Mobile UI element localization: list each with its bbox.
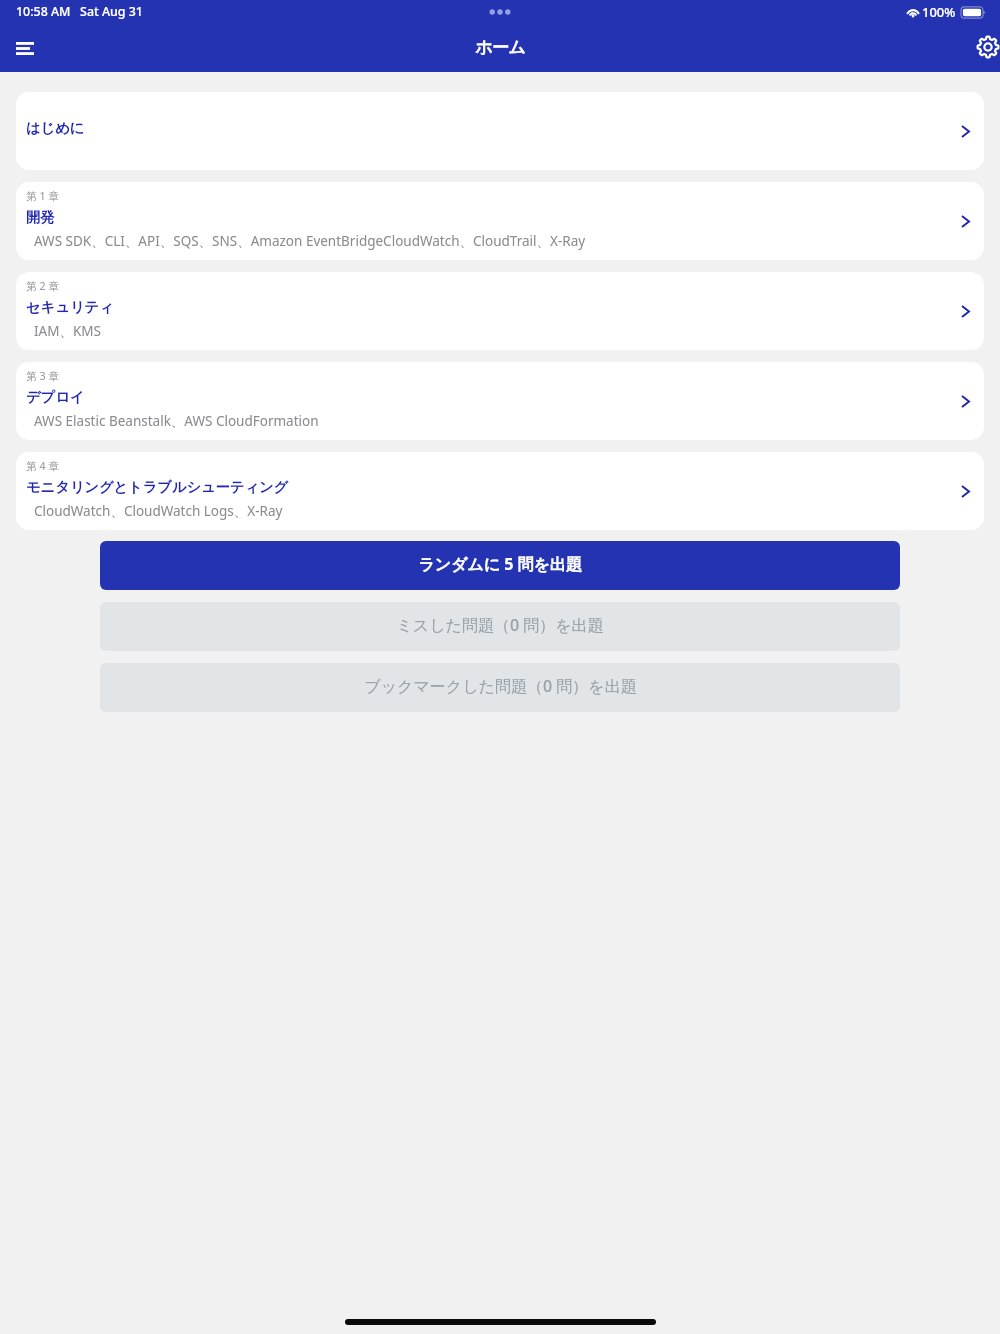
staticText: はじめに <box>26 119 85 137</box>
staticText: ブックマークした問題（0 問）を出題 <box>364 675 637 697</box>
button[interactable]: ミスした問題（0 問）を出題 <box>100 602 900 651</box>
staticText: モニタリングとトラブルシューティング <box>26 478 289 496</box>
staticText: ランダムに 5 問を出題 <box>418 553 582 575</box>
staticText: 第 3 章 <box>26 369 60 384</box>
button[interactable]: Settings <box>976 25 1000 69</box>
staticText: IAM、KMS <box>34 322 101 340</box>
staticText: AWS SDK、CLI、API、SQS、SNS、Amazon EventBrid… <box>34 232 586 250</box>
button[interactable]: はじめに <box>16 92 984 170</box>
staticText: 100% <box>922 3 956 21</box>
staticText: 第 1 章 <box>26 189 60 204</box>
staticText: 第 4 章 <box>26 459 60 474</box>
staticText: デプロイ <box>26 388 85 406</box>
staticText: セキュリティ <box>26 298 114 316</box>
button[interactable]: Menu <box>2 26 48 70</box>
staticText: 10:58 AM Sat Aug 31 <box>16 3 143 20</box>
staticText: 第 2 章 <box>26 279 60 294</box>
staticText: AWS Elastic Beanstalk、AWS CloudFormation <box>34 412 319 430</box>
staticText: CloudWatch、CloudWatch Logs、X-Ray <box>34 502 283 520</box>
button[interactable]: 第 4 章 <box>16 452 984 530</box>
staticText: 開発 <box>26 208 55 226</box>
button[interactable]: 第 1 章 <box>16 182 984 260</box>
button[interactable]: 第 2 章 <box>16 272 984 350</box>
button[interactable]: 第 3 章 <box>16 362 984 440</box>
button[interactable]: ランダムに 5 問を出題 <box>100 541 900 590</box>
staticText: ホーム <box>475 37 525 58</box>
staticText: ミスした問題（0 問）を出題 <box>396 614 604 636</box>
button[interactable]: ブックマークした問題（0 問）を出題 <box>100 663 900 712</box>
